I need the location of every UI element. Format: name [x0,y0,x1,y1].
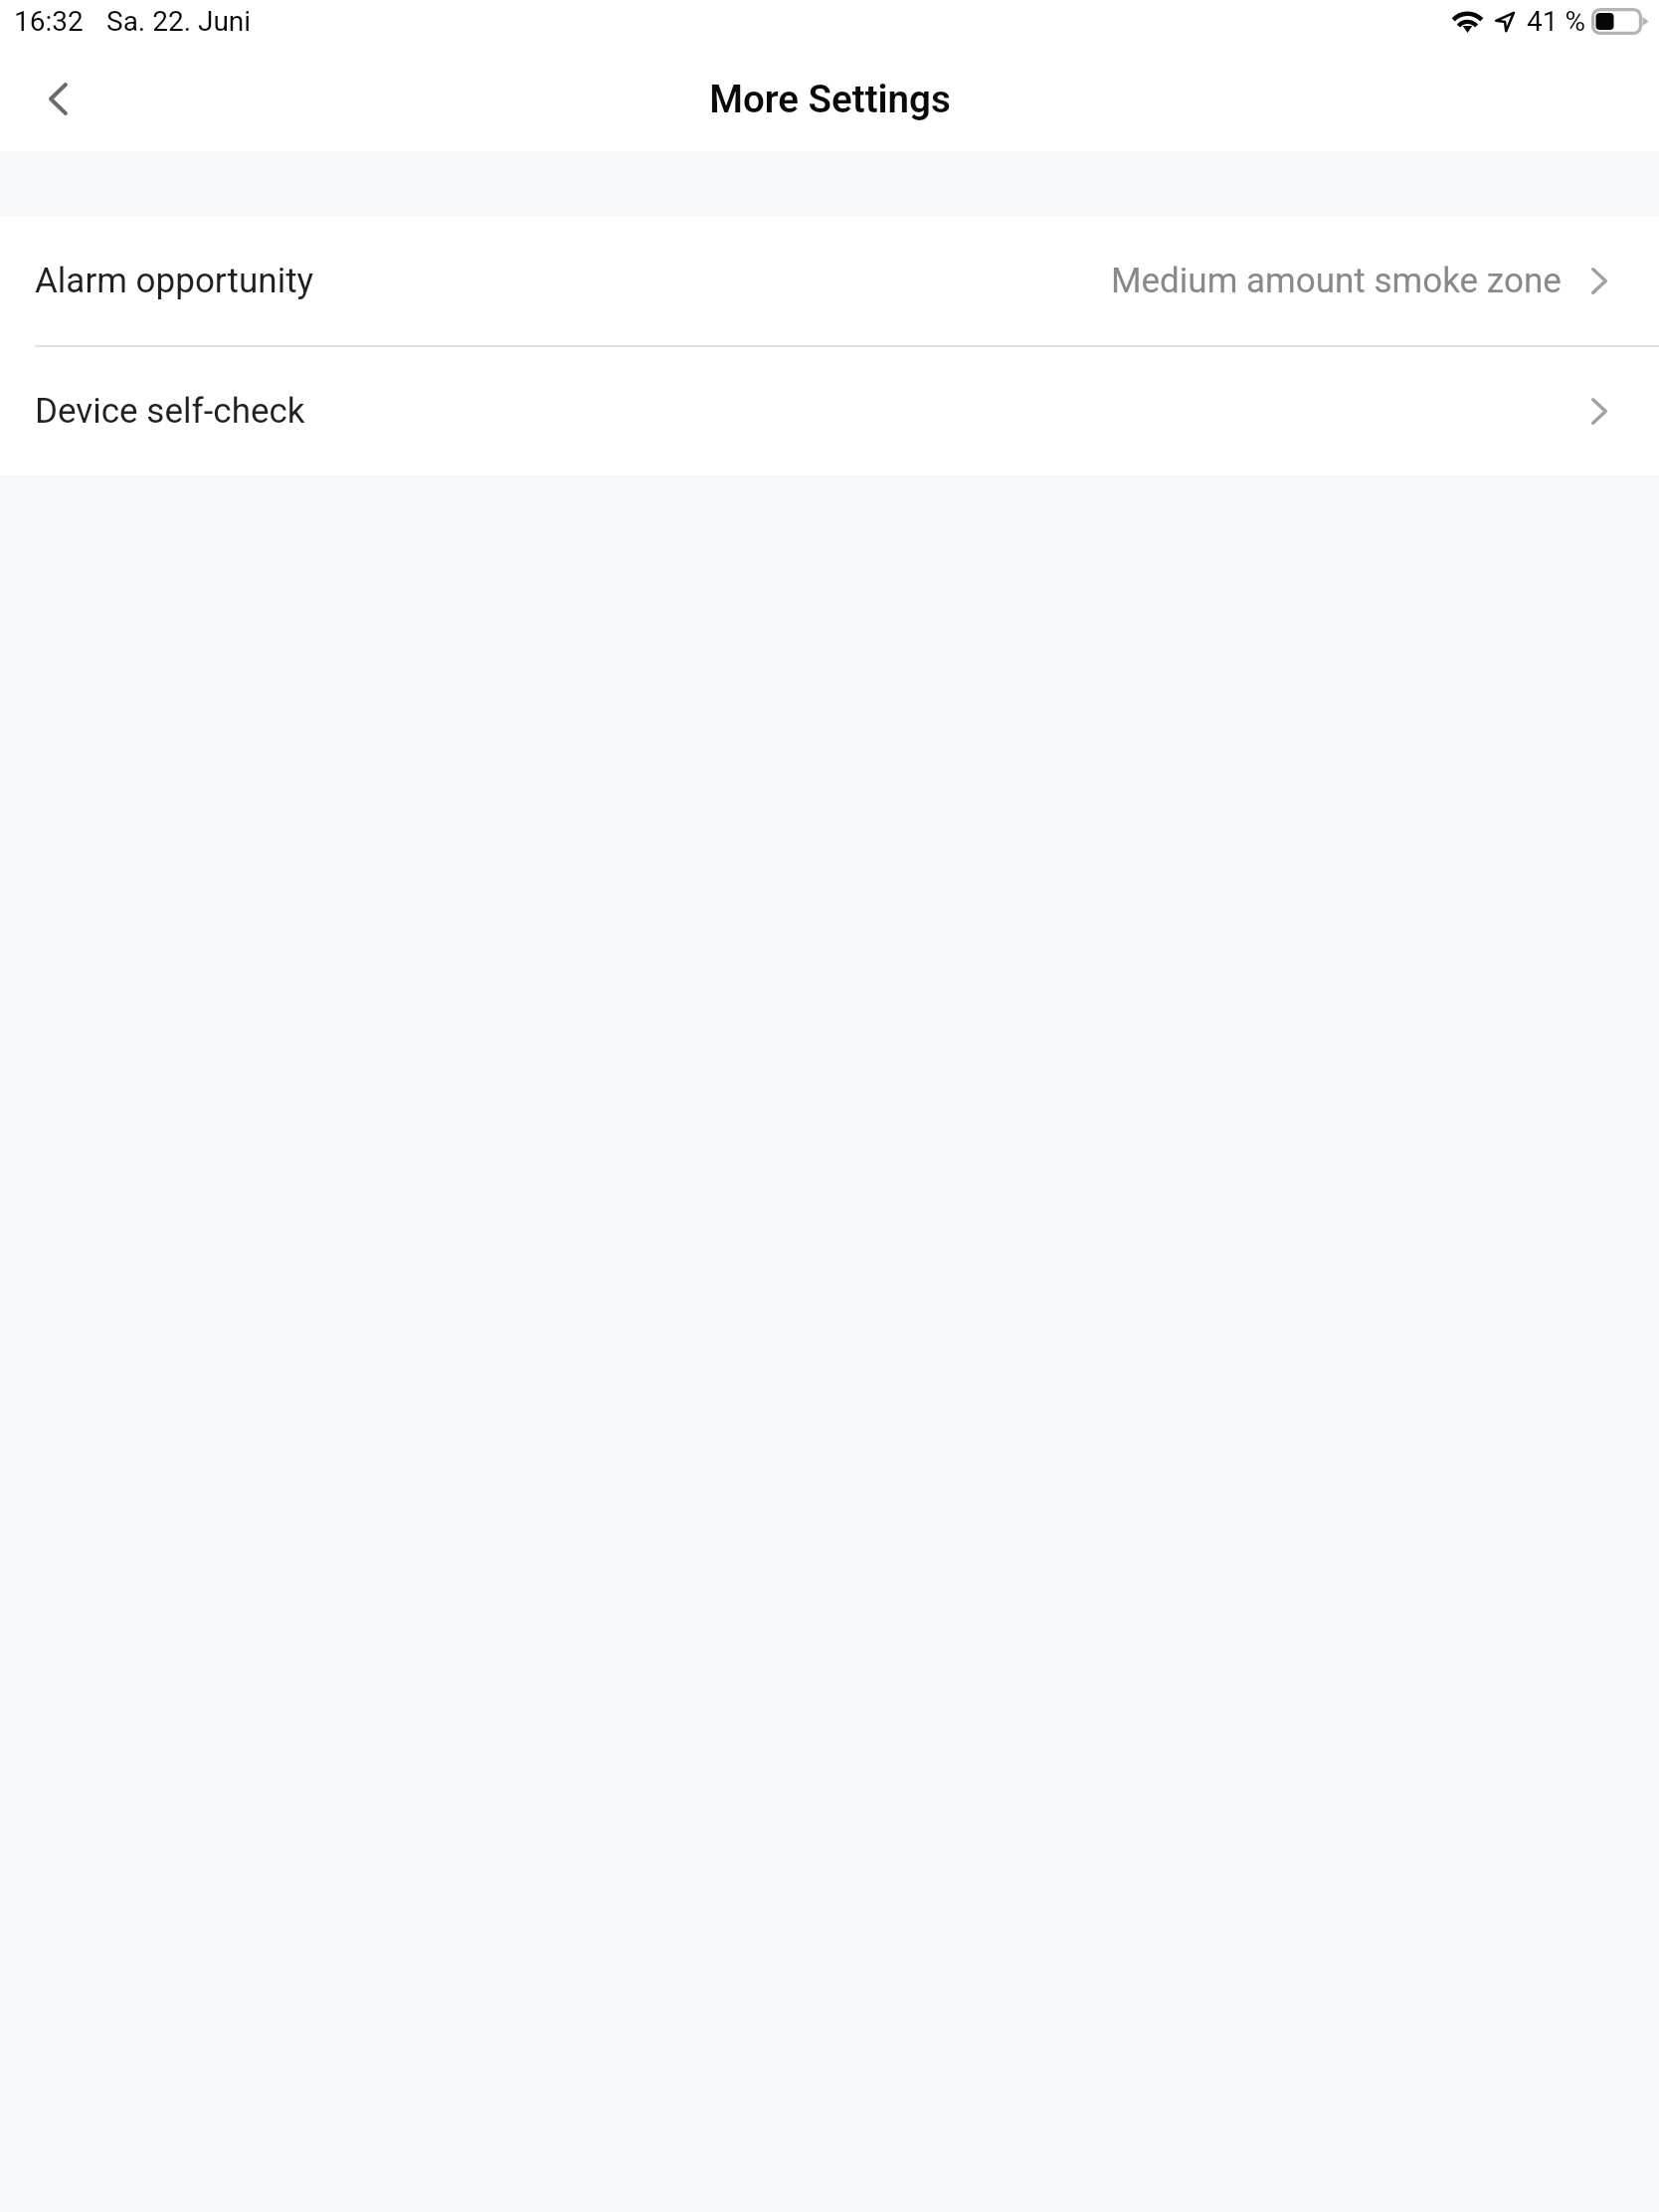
staticText: 41 % [1527,5,1585,38]
button[interactable]: Device self-check [0,347,1659,475]
staticText: Medium amount smoke zone [1111,261,1562,301]
staticText: More Settings [709,77,951,121]
staticText: Device self-check [35,391,305,432]
button[interactable]: Alarm opportunity [0,216,1659,345]
staticText: 16:32 [14,5,84,38]
staticText: Alarm opportunity [35,261,314,301]
button[interactable]: Back [0,46,109,151]
staticText: Sa. 22. Juni [106,5,252,38]
